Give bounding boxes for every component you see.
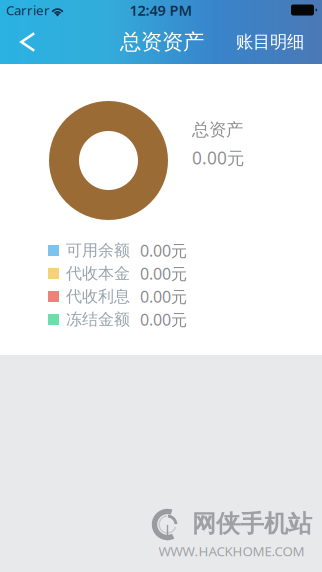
staticText: 代收本金 [66,264,130,283]
button[interactable]: 账目明细 [222,20,322,64]
staticText: 0.00元 [140,240,187,261]
staticText: 0.00元 [140,286,187,307]
staticText: 代收利息 [66,287,130,306]
staticText: 总资产 [192,119,243,140]
button[interactable]: Back [0,20,50,64]
staticText: WWW.HACKHOME.COM [158,542,304,560]
staticText: 可用余额 [66,241,130,260]
staticText: 冻结金额 [66,310,130,329]
staticText: Carrier [6,1,50,19]
staticText: 总资资产 [120,29,204,55]
staticText: 0.00元 [192,146,244,169]
staticText: 账目明细 [236,31,304,53]
staticText: 0.00元 [140,263,187,284]
staticText: 12:49 PM [129,0,192,20]
staticText: 网侠手机站 [192,509,312,539]
staticText: 0.00元 [140,309,187,330]
